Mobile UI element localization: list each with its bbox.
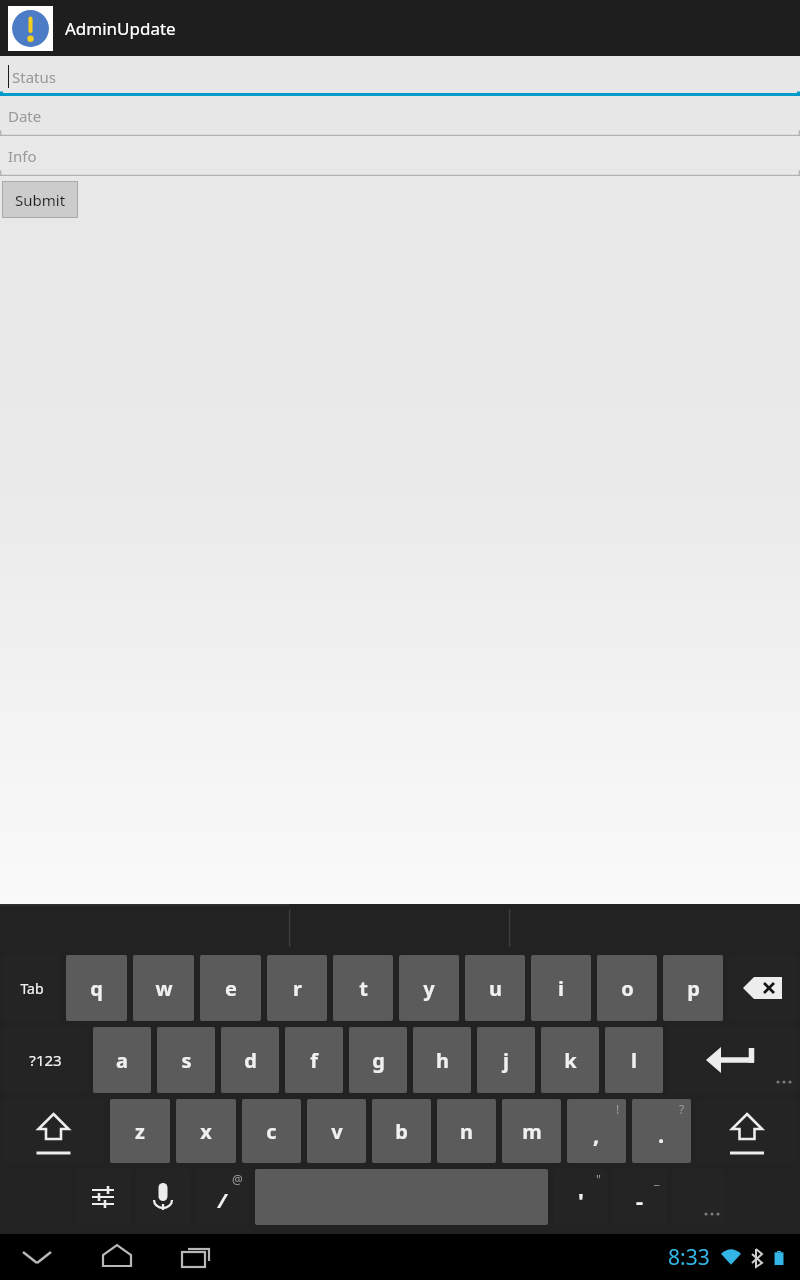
button[interactable]: m [499, 1096, 564, 1166]
button[interactable] [252, 1166, 551, 1228]
button[interactable]: b [369, 1096, 434, 1166]
staticText: . [658, 1119, 665, 1149]
button[interactable]: ! [564, 1096, 629, 1166]
button[interactable]: y [396, 952, 462, 1024]
staticText: / [218, 1187, 227, 1214]
staticText: ! [616, 1101, 620, 1117]
button[interactable]: l [602, 1024, 666, 1096]
staticText: k [564, 1047, 577, 1074]
staticText: s [181, 1047, 192, 1074]
staticText: p [687, 975, 700, 1002]
button[interactable]: d [218, 1024, 282, 1096]
button[interactable]: ?123 [0, 1024, 90, 1096]
button[interactable]: Home [94, 1234, 140, 1280]
button[interactable]: Input settings [73, 1166, 133, 1228]
staticText: i [558, 975, 564, 1002]
staticText: g [372, 1047, 385, 1074]
staticText: ?123 [29, 1050, 62, 1070]
staticText: c [266, 1118, 277, 1145]
staticText: f [310, 1047, 318, 1074]
button[interactable]: c [239, 1096, 304, 1166]
button[interactable]: Shift [694, 1096, 800, 1166]
staticText: e [225, 975, 237, 1002]
staticText: Status [12, 67, 56, 87]
button[interactable]: Tab [0, 952, 63, 1024]
staticText: j [503, 1047, 509, 1074]
staticText: n [460, 1118, 473, 1145]
button[interactable]: o [594, 952, 660, 1024]
staticText: Tab [20, 979, 44, 998]
button[interactable]: Hide keyboard [14, 1234, 60, 1280]
staticText: t [359, 975, 368, 1002]
button[interactable]: s [154, 1024, 218, 1096]
button[interactable]: _ [610, 1166, 669, 1228]
staticText: q [90, 975, 103, 1002]
button[interactable]: z [107, 1096, 173, 1166]
button[interactable]: " [551, 1166, 610, 1228]
button[interactable]: Info [0, 136, 800, 176]
staticText: Info [8, 146, 37, 166]
staticText: w [155, 975, 173, 1002]
staticText: u [489, 975, 502, 1002]
button[interactable]: ? [629, 1096, 694, 1166]
button[interactable]: Date [0, 96, 800, 136]
staticText: a [116, 1047, 128, 1074]
staticText: z [135, 1118, 145, 1145]
button[interactable]: u [462, 952, 528, 1024]
button[interactable]: h [410, 1024, 474, 1096]
button[interactable]: w [130, 952, 197, 1024]
staticText: 8:33 [668, 1243, 710, 1272]
staticText: , [593, 1119, 600, 1149]
button[interactable]: @ [193, 1166, 252, 1228]
button[interactable]: p [660, 952, 726, 1024]
staticText: r [293, 975, 302, 1002]
staticText: d [244, 1047, 257, 1074]
staticText: ? [679, 1101, 685, 1117]
button[interactable]: r [264, 952, 330, 1024]
staticText: v [331, 1118, 343, 1145]
button[interactable]: Shift [0, 1096, 107, 1166]
staticText: h [436, 1047, 449, 1074]
staticText: ' [578, 1185, 584, 1215]
button[interactable]: v [304, 1096, 369, 1166]
staticText: _ [654, 1171, 660, 1187]
button[interactable]: Enter [666, 1024, 800, 1096]
button[interactable]: t [330, 952, 396, 1024]
button[interactable]: Emoticons [669, 1166, 728, 1228]
staticText: x [200, 1118, 212, 1145]
button[interactable]: a [90, 1024, 154, 1096]
staticText: @ [232, 1171, 243, 1187]
button[interactable]: f [282, 1024, 346, 1096]
button[interactable]: Status [0, 56, 800, 96]
staticText: l [631, 1047, 637, 1074]
button[interactable]: e [197, 952, 264, 1024]
button[interactable]: n [434, 1096, 499, 1166]
staticText: " [596, 1171, 601, 1187]
staticText: Date [8, 106, 42, 126]
staticText: AdminUpdate [65, 17, 176, 40]
button[interactable]: i [528, 952, 594, 1024]
button[interactable]: g [346, 1024, 410, 1096]
staticText: - [636, 1185, 644, 1215]
staticText: y [423, 975, 435, 1002]
button[interactable]: Recent apps [174, 1234, 220, 1280]
button[interactable]: q [63, 952, 130, 1024]
staticText: b [395, 1118, 408, 1145]
staticText: Submit [15, 190, 66, 210]
staticText: m [522, 1118, 542, 1145]
button[interactable]: Voice input [133, 1166, 193, 1228]
button[interactable]: Backspace [726, 952, 800, 1024]
button[interactable]: k [538, 1024, 602, 1096]
button[interactable]: j [474, 1024, 538, 1096]
staticText: o [621, 975, 634, 1002]
button[interactable]: Submit [2, 181, 78, 218]
button[interactable]: x [173, 1096, 239, 1166]
